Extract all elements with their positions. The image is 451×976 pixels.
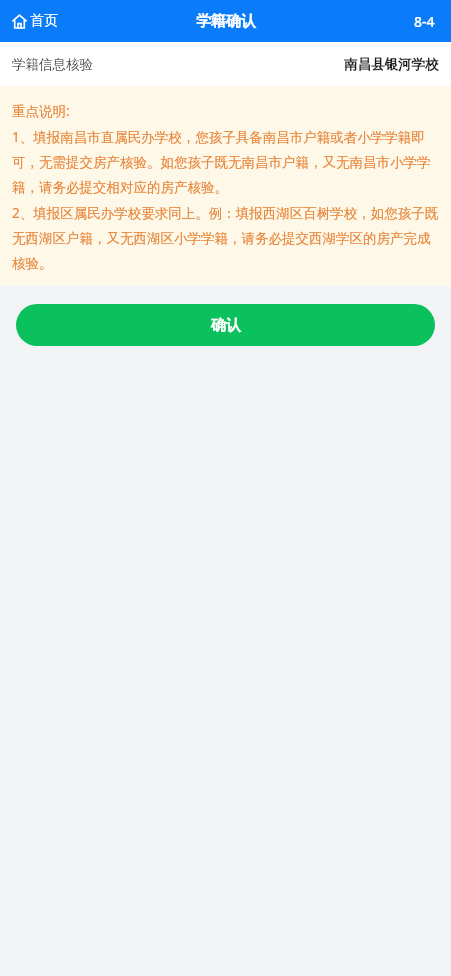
staticText: 学籍确认 <box>196 12 256 31</box>
staticText: 南昌县银河学校 <box>344 56 439 73</box>
button[interactable]: 确认 <box>16 304 435 346</box>
staticText: 8-4 <box>414 12 435 31</box>
staticText: 确认 <box>211 316 241 335</box>
button[interactable]: 首页 <box>0 0 70 42</box>
staticText: 2、填报区属民办学校要求同上。例：填报西湖区百树学校，如您孩子既无西湖区户籍，又… <box>12 198 439 274</box>
staticText: 重点说明: <box>12 96 70 122</box>
staticText: 首页 <box>30 12 58 30</box>
staticText: 学籍信息核验 <box>12 56 93 73</box>
staticText: 1、填报南昌市直属民办学校，您孩子具备南昌市户籍或者小学学籍即可，无需提交房产核… <box>12 122 439 198</box>
